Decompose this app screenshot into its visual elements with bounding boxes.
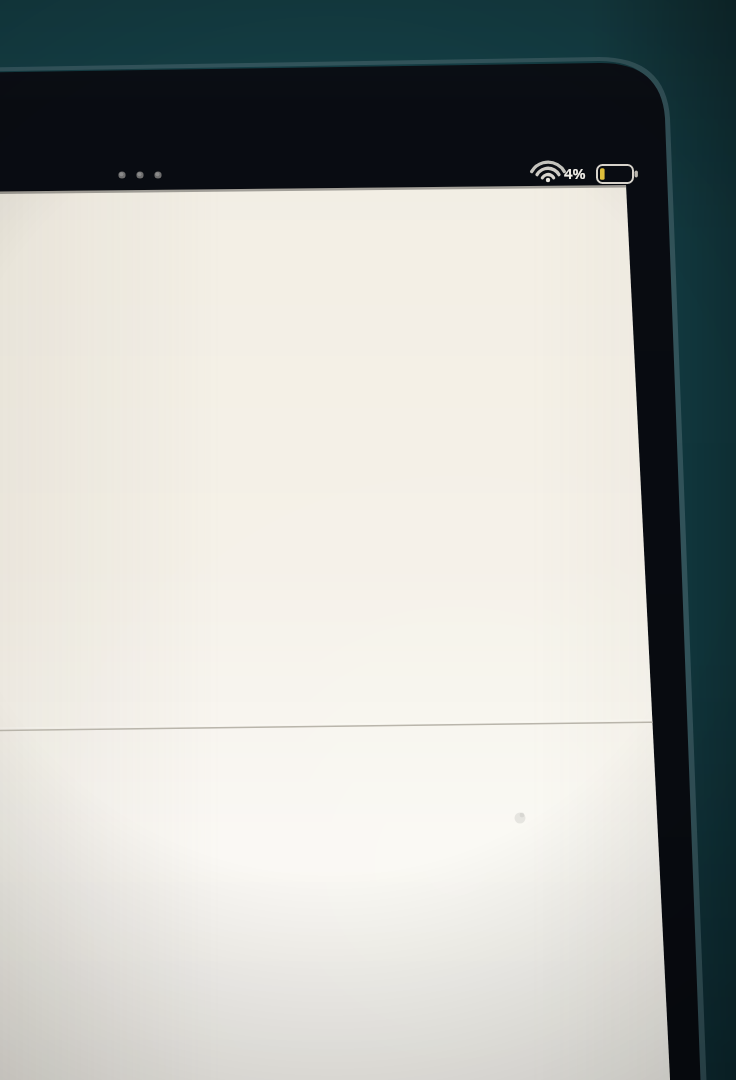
button[interactable]: Tablet screen photo bbox=[0, 0, 736, 1080]
